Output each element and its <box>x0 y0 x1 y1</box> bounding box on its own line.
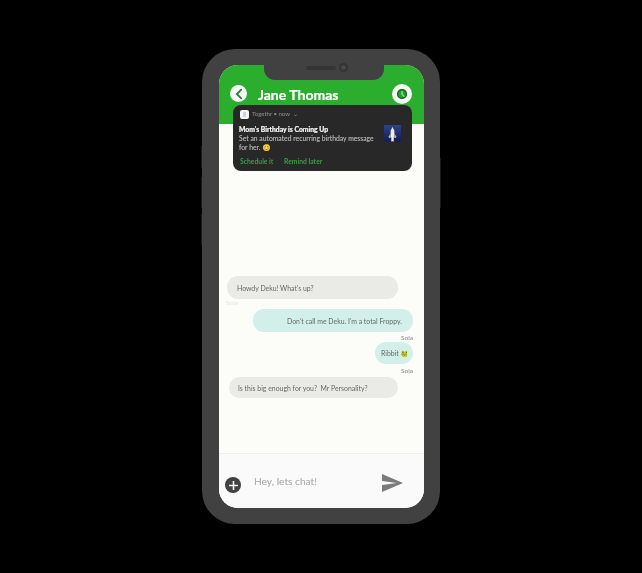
staticText: Set an automated recurring birthday mess… <box>239 134 378 151</box>
staticText: Don't call me Deku. I'm a total Froppy. <box>287 317 402 325</box>
staticText: Schedule it <box>240 157 274 165</box>
button[interactable]: Message history <box>392 84 412 104</box>
button[interactable]: Is this big enough for you? Mr Personali… <box>229 377 398 398</box>
staticText: Ribbit 🐸 <box>381 349 407 357</box>
button[interactable]: Togethr • now ⌄ <box>233 105 412 171</box>
staticText: Hey, lets chat! <box>254 475 318 487</box>
button[interactable]: Back <box>230 85 247 102</box>
staticText: Is this big enough for you? Mr Personali… <box>238 384 368 392</box>
staticText: Howdy Deku! What's up? <box>237 284 314 292</box>
staticText: Sola <box>226 299 238 307</box>
button[interactable]: Schedule it <box>236 154 278 168</box>
staticText: Jane Thomas <box>258 86 339 103</box>
staticText: Sola <box>401 367 413 375</box>
staticText: Mom's Birthday is Coming Up <box>239 125 329 133</box>
button[interactable]: Send <box>380 470 405 495</box>
button[interactable]: Ribbit 🐸 <box>375 342 413 364</box>
staticText: Remind later <box>284 157 323 165</box>
button[interactable]: Add attachment <box>225 477 241 493</box>
staticText: Togethr • now ⌄ <box>252 110 298 117</box>
button[interactable]: Don't call me Deku. I'm a total Froppy. <box>253 309 413 332</box>
staticText: Sola <box>401 334 413 342</box>
button[interactable]: Howdy Deku! What's up? <box>227 276 398 299</box>
button[interactable]: Remind later <box>280 154 327 168</box>
